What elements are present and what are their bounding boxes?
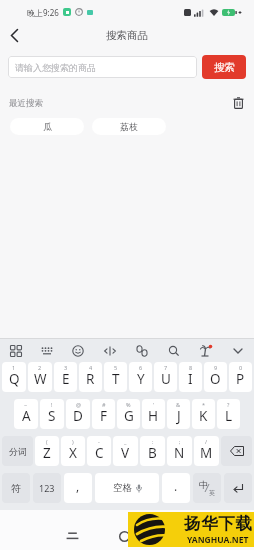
staticText: G: [124, 407, 134, 425]
button[interactable]: [112, 524, 136, 548]
button[interactable]: [224, 473, 252, 503]
staticText: 英: [209, 489, 215, 497]
button[interactable]: !: [40, 399, 64, 429]
staticText: 瓜: [43, 121, 52, 132]
button[interactable]: 123: [33, 473, 61, 503]
button[interactable]: [60, 524, 84, 548]
button[interactable]: [221, 436, 252, 466]
staticText: 4: [89, 364, 93, 371]
staticText: Z: [43, 444, 51, 462]
button[interactable]: 荔枝: [92, 118, 166, 135]
staticText: %: [126, 401, 131, 408]
staticText: K: [199, 407, 208, 425]
button[interactable]: ~: [14, 399, 38, 429]
button[interactable]: &: [167, 399, 190, 429]
staticText: F: [100, 407, 108, 425]
staticText: 晚上9:26: [27, 7, 59, 18]
button[interactable]: #: [92, 399, 115, 429]
staticText: C: [95, 444, 104, 462]
button[interactable]: ,: [64, 473, 92, 503]
button[interactable]: *: [192, 399, 215, 429]
staticText: 最近搜索: [9, 98, 43, 109]
staticText: B: [148, 444, 157, 462]
button[interactable]: 分词: [2, 436, 33, 466]
staticText: 中: [199, 479, 208, 490]
button[interactable]: (: [35, 436, 59, 466]
staticText: Y: [137, 370, 145, 388]
button[interactable]: 2: [28, 362, 52, 392]
staticText: &: [176, 401, 181, 408]
button[interactable]: 6: [129, 362, 152, 392]
staticText: N: [174, 444, 185, 462]
button[interactable]: %: [117, 399, 140, 429]
button[interactable]: [126, 339, 158, 362]
staticText: 3: [64, 364, 68, 371]
staticText: !: [51, 401, 53, 408]
staticText: 请输入您搜索的商品: [15, 62, 96, 73]
staticText: V: [121, 444, 130, 462]
button[interactable]: [0, 339, 31, 362]
staticText: 空格: [113, 482, 132, 494]
button[interactable]: 7: [154, 362, 177, 392]
button[interactable]: 搜索: [202, 55, 246, 79]
staticText: 分词: [9, 446, 27, 457]
staticText: T: [112, 370, 120, 388]
staticText: A: [22, 407, 31, 425]
staticText: D: [73, 407, 83, 425]
staticText: ~: [24, 401, 28, 408]
button[interactable]: 1: [2, 362, 26, 392]
button[interactable]: ;: [167, 436, 192, 466]
staticText: ): [72, 438, 74, 445]
button[interactable]: [190, 339, 222, 362]
button[interactable]: 空格: [95, 473, 159, 503]
staticText: 5: [114, 364, 118, 371]
staticText: R: [86, 370, 95, 388]
staticText: 2: [38, 364, 42, 371]
staticText: 扬华下载: [184, 513, 252, 534]
staticText: 8: [189, 364, 193, 371]
button[interactable]: [230, 95, 246, 111]
button[interactable]: 符: [2, 473, 30, 503]
button[interactable]: .: [162, 473, 190, 503]
staticText: 6: [139, 364, 143, 371]
button[interactable]: /: [194, 436, 219, 466]
staticText: @: [76, 401, 81, 408]
button[interactable]: 4: [79, 362, 102, 392]
staticText: 7: [164, 364, 168, 371]
button[interactable]: 瓜: [10, 118, 84, 135]
button[interactable]: 中: [193, 473, 221, 503]
staticText: ,: [76, 478, 80, 494]
button[interactable]: [94, 339, 126, 362]
button[interactable]: ?: [217, 399, 240, 429]
staticText: 1: [12, 364, 16, 371]
button[interactable]: [62, 339, 94, 362]
staticText: *: [202, 401, 206, 408]
button[interactable]: [222, 339, 254, 362]
staticText: S: [48, 407, 56, 425]
button[interactable]: 3: [54, 362, 77, 392]
button[interactable]: 5: [104, 362, 127, 392]
staticText: _: [124, 438, 127, 445]
staticText: U: [161, 370, 171, 388]
button[interactable]: 8: [179, 362, 202, 392]
button[interactable]: ): [61, 436, 85, 466]
button[interactable]: :: [140, 436, 165, 466]
button[interactable]: @: [66, 399, 90, 429]
button[interactable]: [31, 339, 62, 362]
button[interactable]: [4, 24, 26, 46]
button[interactable]: 9: [204, 362, 227, 392]
staticText: 123: [39, 482, 55, 494]
staticText: YANGHUA.NET: [187, 534, 249, 546]
staticText: Q: [9, 370, 20, 388]
button[interactable]: 扬华下载: [128, 512, 254, 547]
button[interactable]: _: [113, 436, 138, 466]
button[interactable]: ': [142, 399, 165, 429]
button[interactable]: [158, 339, 190, 362]
button[interactable]: 请输入您搜索的商品: [8, 56, 197, 78]
staticText: O: [210, 370, 221, 388]
staticText: 荔枝: [120, 121, 138, 132]
staticText: H: [148, 407, 159, 425]
staticText: .: [174, 478, 178, 494]
button[interactable]: 0: [229, 362, 252, 392]
button[interactable]: -: [87, 436, 111, 466]
